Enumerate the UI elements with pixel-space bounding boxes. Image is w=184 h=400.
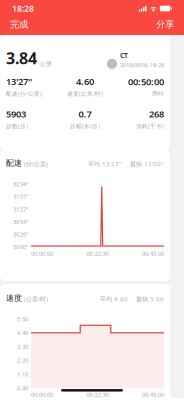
staticText: 步幅(米/步) bbox=[70, 122, 100, 130]
staticText: 30'29" bbox=[13, 230, 28, 238]
staticText: 3.30 bbox=[17, 343, 28, 350]
staticText: 31'57" bbox=[13, 193, 28, 200]
staticText: 5903 bbox=[6, 107, 26, 120]
staticText: 00:00:00 bbox=[31, 250, 53, 257]
staticText: 分享 bbox=[156, 19, 174, 30]
staticText: 最快 12'00" bbox=[130, 160, 164, 168]
staticText: 2.20 bbox=[17, 356, 28, 364]
staticText: 30'54" bbox=[13, 218, 28, 226]
staticText: 0.7 bbox=[78, 107, 91, 120]
staticText: 4.60 bbox=[76, 75, 94, 88]
staticText: 配速(分/公里) bbox=[6, 90, 42, 97]
button[interactable]: 完成 bbox=[10, 17, 40, 32]
staticText: 步数(步) bbox=[6, 122, 28, 130]
staticText: 3.84 bbox=[6, 47, 37, 69]
staticText: (公里/时) bbox=[24, 295, 48, 303]
staticText: 00:45:00 bbox=[142, 391, 164, 398]
staticText: 00:50:00 bbox=[128, 75, 164, 88]
staticText: 18:28 bbox=[12, 3, 34, 14]
staticText: 00:22:30 bbox=[86, 250, 108, 257]
staticText: 完成 bbox=[10, 19, 28, 30]
staticText: 0.00 bbox=[17, 384, 28, 392]
staticText: 用时 bbox=[152, 90, 164, 97]
staticText: 268 bbox=[149, 107, 164, 120]
staticText: 2019/09/06 18:28 bbox=[120, 61, 164, 69]
staticText: 4.40 bbox=[17, 329, 28, 337]
staticText: (分/公里) bbox=[24, 160, 48, 168]
staticText: 最快 5.00 bbox=[136, 295, 164, 303]
staticText: 消耗(千卡) bbox=[136, 122, 164, 130]
staticText: 32'24" bbox=[13, 180, 28, 188]
staticText: 00:00:00 bbox=[31, 391, 53, 398]
staticText: 00:45:00 bbox=[142, 250, 164, 257]
staticText: 31'27" bbox=[13, 205, 28, 213]
button[interactable]: 分享 bbox=[144, 17, 174, 32]
staticText: 5.50 bbox=[17, 315, 28, 323]
staticText: 平均 4.60 bbox=[100, 295, 128, 303]
staticText: 30'00" bbox=[13, 243, 28, 251]
staticText: 配速 bbox=[6, 158, 22, 168]
staticText: 平均 13'27" bbox=[88, 160, 122, 168]
staticText: 速度 bbox=[6, 293, 22, 303]
staticText: 速度(公里/时) bbox=[67, 90, 103, 97]
staticText: CT bbox=[120, 51, 128, 60]
staticText: 13'27" bbox=[6, 75, 32, 88]
staticText: 1.10 bbox=[17, 370, 28, 378]
staticText: 00:22:30 bbox=[86, 391, 108, 398]
staticText: 公里 bbox=[40, 60, 52, 68]
